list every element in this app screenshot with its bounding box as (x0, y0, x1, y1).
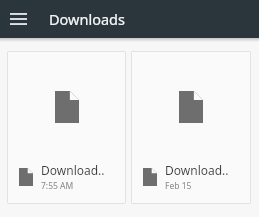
staticText: Feb 15 (165, 180, 192, 192)
staticText: Downloads (49, 9, 125, 29)
button[interactable]: Download.. (131, 51, 251, 204)
staticText: Download.. (41, 162, 105, 178)
button[interactable]: Open navigation drawer (4, 5, 32, 33)
staticText: Download.. (165, 162, 229, 178)
button[interactable]: Download.. (7, 51, 126, 204)
staticText: 7:55 AM (41, 180, 74, 192)
